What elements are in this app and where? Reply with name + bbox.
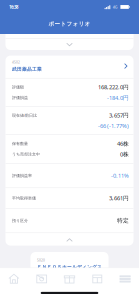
button[interactable]: 折りたたむ (5, 233, 133, 247)
staticText: -66 (-1.77%) (98, 122, 129, 130)
staticText: 4502 (12, 60, 20, 64)
staticText: ＥＮＥＯＳホールディングス (37, 264, 102, 270)
staticText: 評価額 (12, 84, 24, 89)
staticText: 保有数量 (12, 141, 28, 146)
button[interactable]: 口座 (28, 268, 56, 290)
staticText: -184.0円 (107, 94, 129, 102)
staticText: 特定 (117, 217, 129, 224)
staticText: 4G (113, 4, 118, 10)
staticText: 46株 (117, 140, 129, 147)
staticText: 評価損益 (12, 95, 28, 100)
staticText: 現在値/前日比 (12, 112, 37, 118)
staticText: 3,661円 (109, 194, 129, 202)
staticText: 16:38 (9, 4, 18, 10)
staticText: 0株 (120, 150, 129, 158)
staticText: 武田薬品工業 (12, 66, 42, 72)
staticText: 預り区分 (12, 218, 28, 223)
staticText: 3,657円 (109, 111, 129, 119)
button[interactable]: 商品 (56, 268, 83, 290)
staticText: 平均取得単価 (12, 195, 36, 200)
button[interactable]: 4502 (5, 54, 133, 78)
button[interactable]: マーケット (83, 268, 111, 290)
staticText: 5020 (37, 258, 45, 262)
staticText: 評価損益率 (12, 173, 32, 178)
staticText: 168,222.0円 (98, 83, 129, 91)
staticText: -0.11% (111, 172, 129, 179)
button[interactable]: メニュー (111, 268, 139, 290)
staticText: ポートフォリオ (48, 20, 90, 28)
button[interactable]: ホーム (0, 268, 28, 290)
staticText: うち売却注文中 (12, 152, 40, 157)
